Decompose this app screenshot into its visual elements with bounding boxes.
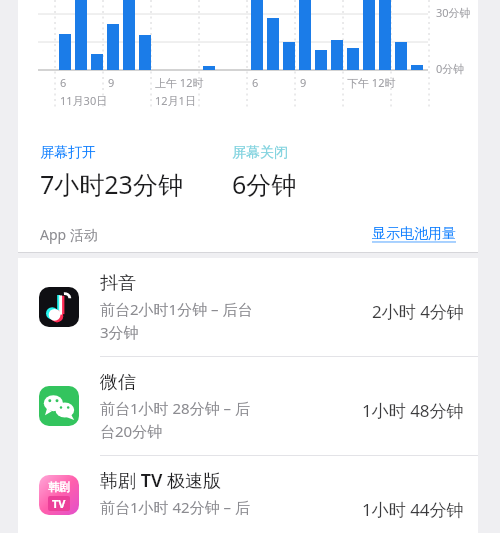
staticText: 30分钟 xyxy=(436,5,471,20)
staticText: 微信 xyxy=(100,371,136,394)
staticText: 11月30日 xyxy=(60,93,108,108)
staticText: 9 xyxy=(108,75,115,90)
other: 韩剧 TV 极速版 xyxy=(39,475,79,515)
staticText: 6 xyxy=(60,75,67,90)
staticText: 6分钟 xyxy=(232,167,297,201)
staticText: 前台1小时 42分钟 – 后 xyxy=(100,497,362,517)
staticText: 显示电池用量 xyxy=(372,225,456,243)
staticText: 7小时23分钟 xyxy=(40,167,183,201)
staticText: TV xyxy=(52,496,66,511)
staticText: 屏幕关闭 xyxy=(232,144,288,162)
staticText: 1小时 48分钟 xyxy=(362,399,464,422)
staticText: 下午 12时 xyxy=(347,75,396,90)
other: 抖音 xyxy=(39,287,79,327)
button[interactable]: 韩剧 TV 极速版 xyxy=(18,456,478,533)
staticText: 前台2小时1分钟 – 后台 3分钟 xyxy=(100,299,372,343)
staticText: 0分钟 xyxy=(436,61,465,76)
button[interactable]: 显示电池用量 xyxy=(368,221,460,247)
staticText: 1小时 44分钟 xyxy=(362,498,464,521)
button[interactable]: 微信 xyxy=(18,357,478,455)
staticText: 韩剧 TV 极速版 xyxy=(100,468,221,493)
staticText: 前台1小时 28分钟 – 后 台20分钟 xyxy=(100,398,362,442)
staticText: 9 xyxy=(300,75,307,90)
staticText: 韩剧 xyxy=(48,480,70,494)
staticText: 12月1日 xyxy=(155,93,196,108)
staticText: 上午 12时 xyxy=(155,75,204,90)
staticText: 2小时 4分钟 xyxy=(372,300,464,323)
other: 微信 xyxy=(39,386,79,426)
staticText: 6 xyxy=(252,75,259,90)
staticText: 屏幕打开 xyxy=(40,144,96,162)
staticText: App 活动 xyxy=(40,225,98,244)
staticText: 抖音 xyxy=(100,272,136,295)
button[interactable]: 抖音 xyxy=(18,258,478,356)
